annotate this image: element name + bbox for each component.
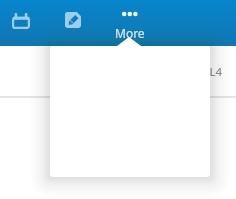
staticText: More bbox=[115, 25, 145, 41]
staticText: ROOM L4 bbox=[171, 64, 223, 80]
button[interactable]: More bbox=[104, 2, 155, 45]
button[interactable]: Calendar bbox=[2, 2, 38, 42]
button[interactable]: Edit bbox=[57, 4, 89, 36]
